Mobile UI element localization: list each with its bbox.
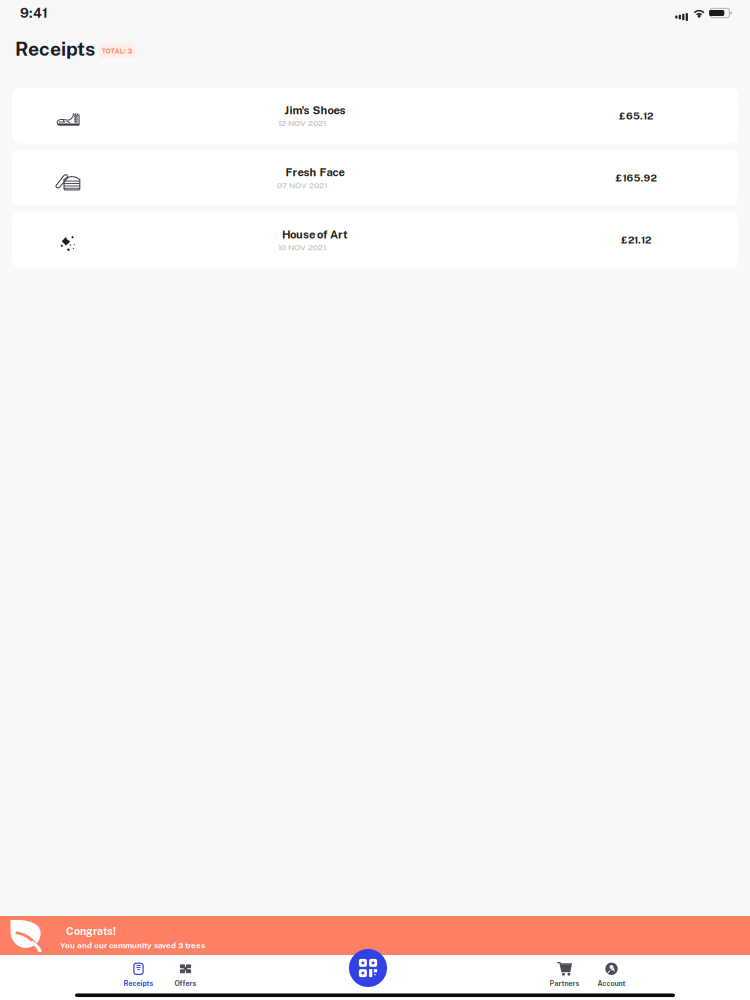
staticText: Partners [549, 979, 579, 987]
staticText: Account [597, 979, 625, 987]
button[interactable]: House of Art [12, 212, 738, 268]
staticText: £165.92 [615, 172, 656, 184]
staticText: TOTAL: 3 [102, 47, 132, 55]
button[interactable]: Partners [541, 954, 588, 988]
staticText: Offers [174, 979, 196, 987]
staticText: Receipts [15, 37, 95, 60]
staticText: 9:41 [20, 5, 48, 21]
button[interactable]: Offers [162, 954, 209, 988]
staticText: 07 NOV 2021 [277, 180, 327, 190]
staticText: You and our community saved 3 trees [60, 940, 205, 950]
staticText: Congrats! [66, 925, 116, 937]
staticText: Jim's Shoes [284, 104, 345, 117]
staticText: £65.12 [619, 110, 653, 122]
staticText: £21.12 [621, 234, 651, 246]
button[interactable]: Receipts [115, 954, 162, 988]
staticText: Receipts [123, 979, 153, 987]
button[interactable]: Scan QR code [348, 948, 388, 988]
button[interactable]: Fresh Face [12, 150, 738, 206]
button[interactable]: Jim's Shoes [12, 88, 738, 143]
staticText: 12 NOV 2021 [278, 118, 326, 128]
staticText: 10 NOV 2021 [278, 242, 326, 252]
button[interactable]: Account [588, 954, 635, 988]
staticText: House of Art [282, 228, 348, 241]
staticText: Fresh Face [285, 166, 344, 179]
